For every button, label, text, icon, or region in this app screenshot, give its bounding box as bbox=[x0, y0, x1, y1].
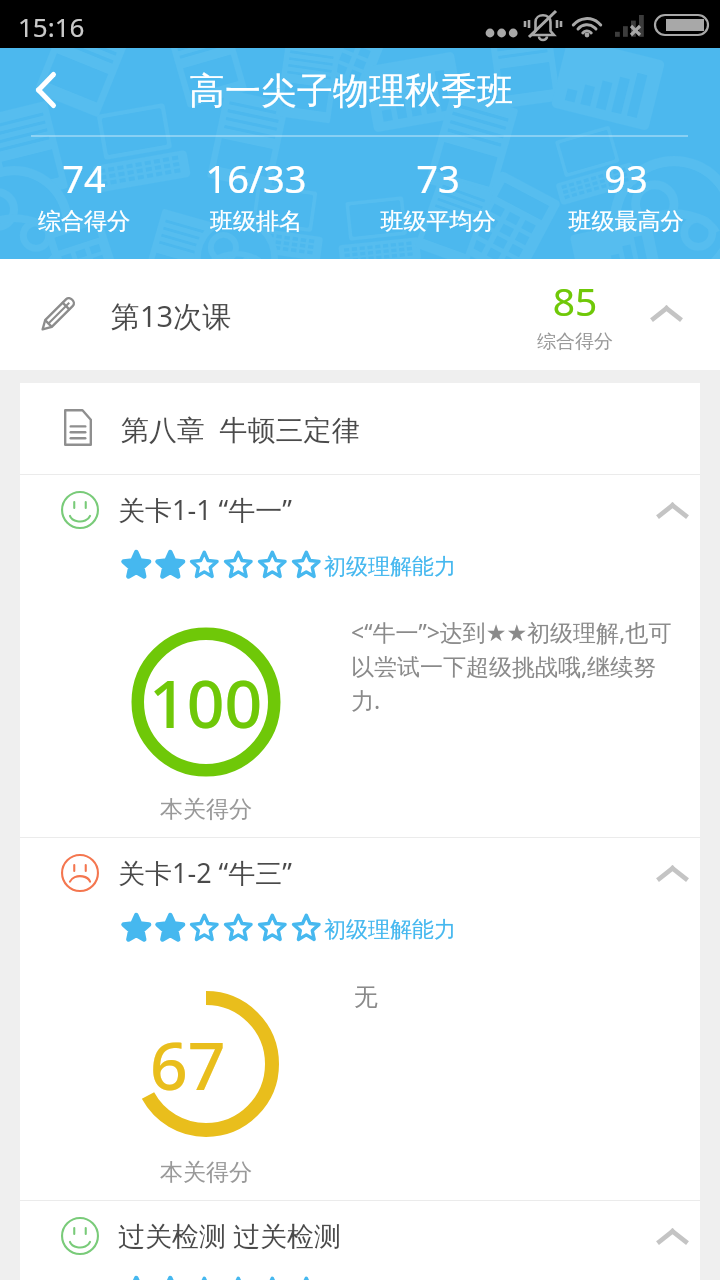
staticText: 初级理解能力 bbox=[324, 553, 456, 581]
staticText: 关卡1-1 “牛一” bbox=[118, 491, 292, 528]
staticText: 74 bbox=[0, 152, 194, 204]
button[interactable]: 73 bbox=[328, 152, 548, 204]
staticText: 过关检测 过关检测 bbox=[118, 1217, 342, 1254]
staticText: 初级理解能力 bbox=[324, 916, 456, 944]
staticText: 第13次课 bbox=[111, 296, 232, 336]
button[interactable]: 93 bbox=[516, 152, 720, 204]
staticText: 73 bbox=[328, 152, 548, 204]
button[interactable]: 第八章 牛顿三定律 bbox=[20, 383, 700, 474]
staticText: 班级排名 bbox=[146, 207, 366, 236]
staticText: 关卡1-2 “牛三” bbox=[118, 854, 292, 891]
staticText: 本关得分 bbox=[126, 1158, 286, 1187]
button[interactable]: Back bbox=[6, 48, 86, 136]
staticText: 本关得分 bbox=[126, 795, 286, 824]
staticText: 67 bbox=[150, 1019, 226, 1109]
staticText: 班级最高分 bbox=[516, 207, 720, 236]
button[interactable]: 第13次课 bbox=[0, 259, 720, 370]
staticText: 综合得分 bbox=[0, 207, 194, 236]
staticText: 班级平均分 bbox=[328, 207, 548, 236]
button[interactable]: 关卡1-1 “牛一” bbox=[20, 474, 700, 547]
button[interactable]: 关卡1-2 “牛三” bbox=[20, 837, 700, 910]
staticText: 93 bbox=[516, 152, 720, 204]
staticText: 高一尖子物理秋季班 bbox=[0, 68, 711, 113]
staticText: <“牛一”>达到★★初级理解,也可以尝试一下超级挑战哦,继续努力. bbox=[351, 616, 673, 716]
staticText: 15:16 bbox=[18, 9, 85, 44]
staticText: 16/33 bbox=[146, 152, 366, 204]
button[interactable]: 74 bbox=[0, 152, 194, 204]
button[interactable]: 过关检测 过关检测 bbox=[20, 1200, 700, 1273]
staticText: 85 bbox=[510, 274, 640, 327]
button[interactable]: 16/33 bbox=[146, 152, 366, 204]
staticText: 综合得分 bbox=[510, 330, 640, 354]
staticText: 100 bbox=[149, 657, 263, 747]
staticText: 无 bbox=[354, 982, 378, 1012]
staticText: 第八章 牛顿三定律 bbox=[121, 410, 360, 448]
